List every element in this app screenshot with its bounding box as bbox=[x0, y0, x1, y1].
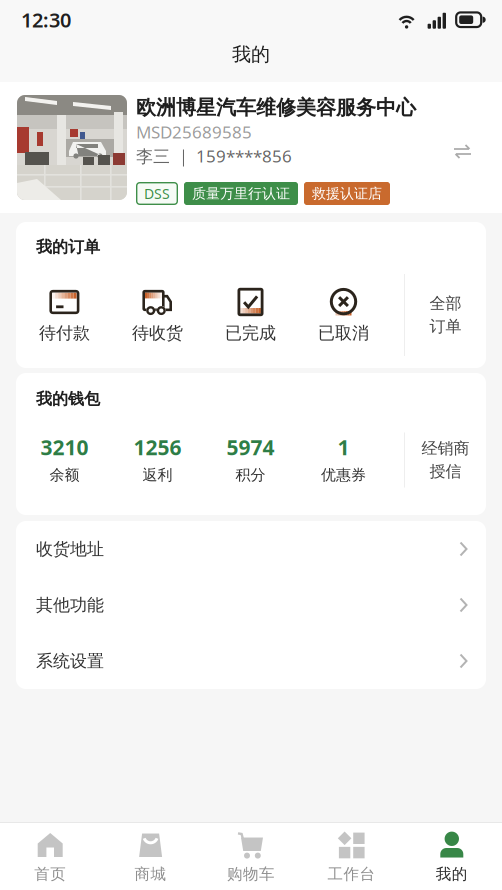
staticText: 5974 bbox=[226, 433, 274, 461]
staticText: 我的 bbox=[232, 43, 270, 66]
staticText: DSS bbox=[144, 184, 170, 203]
staticText: 我的订单 bbox=[36, 237, 100, 257]
button[interactable]: 我的 bbox=[402, 823, 502, 883]
staticText: 我的 bbox=[436, 864, 468, 883]
staticText: 12:30 bbox=[21, 6, 71, 33]
button[interactable]: 经销商 bbox=[405, 437, 486, 483]
staticText: 收货地址 bbox=[36, 539, 104, 559]
button[interactable]: 系统设置 bbox=[16, 633, 486, 689]
staticText: 授信 bbox=[429, 462, 461, 481]
button[interactable]: 1 bbox=[297, 434, 390, 486]
staticText: 经销商 bbox=[421, 439, 469, 458]
button[interactable]: 首页 bbox=[0, 823, 100, 883]
staticText: 我的钱包 bbox=[36, 389, 100, 409]
staticText: 首页 bbox=[34, 864, 66, 883]
button[interactable]: 待收货 bbox=[111, 286, 204, 344]
button[interactable]: 欧洲博星汽车维修美容服务中心 bbox=[0, 82, 502, 213]
staticText: 1 bbox=[337, 433, 349, 461]
staticText: 待收货 bbox=[132, 323, 183, 343]
staticText: 余额 bbox=[49, 466, 79, 484]
staticText: 商城 bbox=[135, 864, 167, 883]
button[interactable]: 待付款 bbox=[18, 286, 111, 344]
staticText: 3210 bbox=[40, 433, 88, 461]
staticText: 系统设置 bbox=[36, 651, 104, 671]
staticText: 已完成 bbox=[225, 323, 276, 343]
staticText: 其他功能 bbox=[36, 595, 104, 615]
staticText: 工作台 bbox=[327, 864, 375, 883]
staticText: 待付款 bbox=[39, 323, 90, 343]
staticText: MSD25689585 bbox=[136, 121, 252, 143]
staticText: 优惠券 bbox=[321, 466, 366, 484]
staticText: 质量万里行认证 bbox=[192, 185, 290, 202]
staticText: 全部 bbox=[429, 294, 461, 313]
button[interactable]: 已取消 bbox=[297, 286, 390, 344]
button[interactable]: 商城 bbox=[100, 823, 201, 883]
staticText: 购物车 bbox=[227, 864, 275, 883]
button[interactable]: 购物车 bbox=[201, 823, 301, 883]
staticText: 救援认证店 bbox=[312, 185, 382, 202]
button[interactable]: 切换门店 bbox=[454, 144, 472, 167]
button[interactable]: 已完成 bbox=[204, 286, 297, 344]
button[interactable]: 工作台 bbox=[301, 823, 402, 883]
button[interactable]: 全部 bbox=[405, 292, 486, 338]
button[interactable]: 收货地址 bbox=[16, 521, 486, 577]
button[interactable]: 其他功能 bbox=[16, 577, 486, 633]
staticText: 积分 bbox=[235, 466, 265, 484]
staticText: 李三 ｜ 159****856 bbox=[136, 145, 292, 167]
staticText: 订单 bbox=[429, 317, 461, 336]
staticText: 返利 bbox=[142, 466, 172, 484]
button[interactable]: 3210 bbox=[18, 434, 111, 486]
staticText: 1256 bbox=[133, 433, 181, 461]
button[interactable]: 1256 bbox=[111, 434, 204, 486]
staticText: 已取消 bbox=[318, 323, 369, 343]
staticText: 欧洲博星汽车维修美容服务中心 bbox=[136, 95, 416, 120]
button[interactable]: 5974 bbox=[204, 434, 297, 486]
